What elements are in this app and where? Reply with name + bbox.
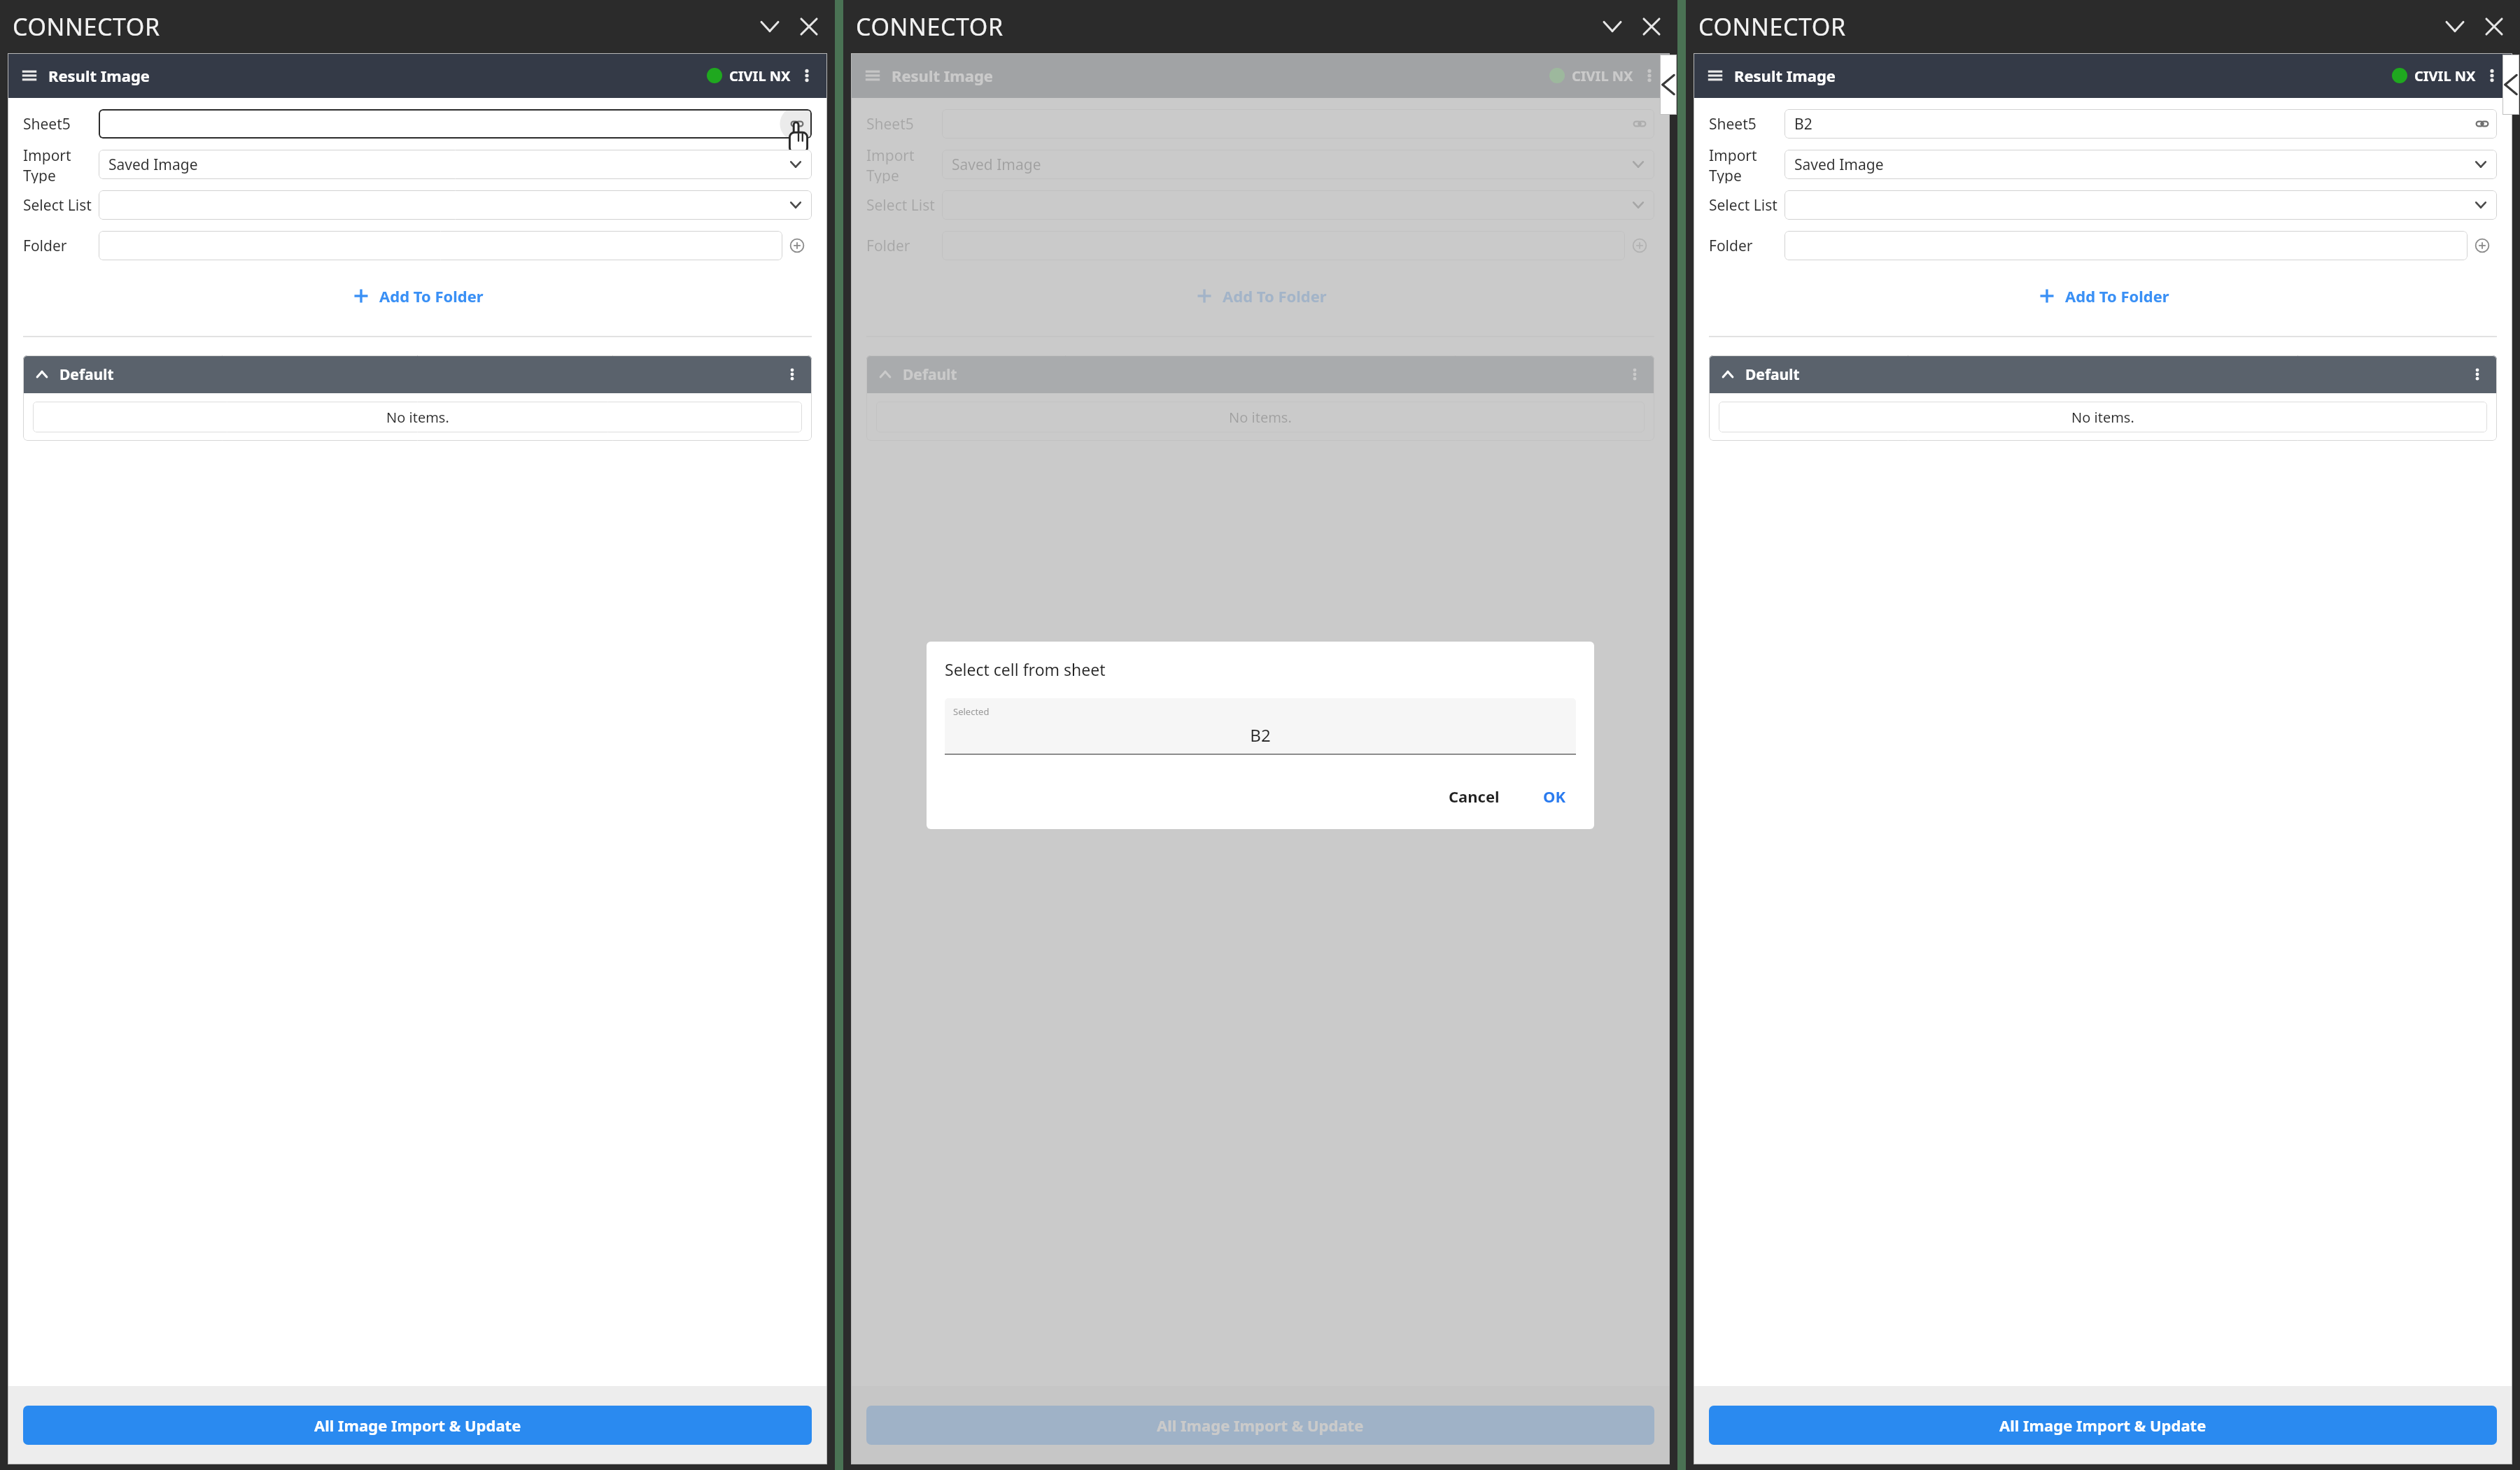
button[interactable]: Close [2478,10,2510,43]
staticText: Default [903,365,957,385]
staticText: CONNECTOR [856,10,1004,43]
staticText: CIVIL NX [2414,66,2476,85]
staticText: Add To Folder [2065,285,2169,306]
button[interactable] [99,231,782,260]
button[interactable]: Card menu [782,365,802,384]
button[interactable]: Add folder [782,231,812,260]
button[interactable]: No items. [33,402,802,432]
staticText: Folder [866,236,942,256]
staticText: All Image Import & Update [314,1415,521,1436]
staticText: Sheet5 [866,114,942,134]
button[interactable] [1785,190,2497,220]
button[interactable] [99,190,812,220]
staticText: Result Image [48,65,150,86]
staticText: Add To Folder [379,285,484,306]
staticText: No items. [1229,408,1292,427]
button[interactable]: Add To Folder [866,280,1654,312]
staticText: Folder [1709,236,1785,256]
staticText: CIVIL NX [729,66,791,85]
button[interactable]: OK [1533,780,1576,812]
button[interactable]: Cancel [1439,780,1509,812]
button[interactable]: Add To Folder [23,280,812,312]
staticText: Result Image [892,65,993,86]
button[interactable]: More options [2482,65,2503,86]
button[interactable]: All Image Import & Update [23,1406,812,1445]
staticText: Import Type [866,146,942,183]
staticText: Default [1745,365,1800,385]
staticText: Saved Image [1794,155,1884,175]
button[interactable]: More options [1639,65,1660,86]
button[interactable] [1785,231,2468,260]
staticText: Select List [1709,195,1785,215]
staticText: Saved Image [108,155,198,175]
button[interactable]: Card menu [1625,365,1645,384]
button[interactable]: Select cell from sheet [787,113,808,134]
staticText: B2 [1794,114,1812,134]
button[interactable]: All Image Import & Update [866,1406,1654,1445]
button[interactable]: Card menu [2468,365,2487,384]
button[interactable]: Select cell from sheet [99,109,812,139]
staticText: OK [1543,786,1566,807]
staticText: Sheet5 [1709,114,1785,134]
button[interactable]: B2 [1785,109,2497,139]
staticText: Default [59,365,114,385]
button[interactable]: Default [1719,355,2487,393]
button[interactable]: Collapse panel [2503,55,2519,115]
button[interactable]: No items. [876,402,1645,432]
button[interactable]: Minimize [2439,10,2471,43]
button[interactable]: Collapse panel [1660,55,1677,115]
button[interactable]: Minimize [754,10,786,43]
staticText: Sheet5 [23,114,99,134]
button[interactable]: Minimize [1596,10,1628,43]
button[interactable]: More options [796,65,817,86]
button[interactable]: Saved Image [1785,150,2497,179]
staticText: No items. [386,408,449,427]
button[interactable]: Saved Image [942,150,1654,179]
staticText: CONNECTOR [13,10,160,43]
staticText: Cancel [1449,786,1500,807]
button[interactable]: Default [876,355,1645,393]
staticText: All Image Import & Update [1999,1415,2206,1436]
staticText: Folder [23,236,99,256]
staticText: B2 [945,723,1576,747]
staticText: Import Type [23,146,99,183]
button[interactable]: Menu [17,64,41,87]
staticText: Select List [23,195,99,215]
button[interactable]: Add folder [2468,231,2497,260]
button[interactable]: All Image Import & Update [1709,1406,2497,1445]
button[interactable]: Saved Image [99,150,812,179]
button[interactable]: Add To Folder [1709,280,2497,312]
staticText: Saved Image [952,155,1041,175]
button[interactable]: Select cell from sheet [2472,113,2493,134]
staticText: Select cell from sheet [945,658,1106,680]
staticText: All Image Import & Update [1157,1415,1364,1436]
staticText: No items. [2071,408,2134,427]
staticText: Select List [866,195,942,215]
button[interactable]: Menu [1703,64,1727,87]
button[interactable]: Menu [861,64,885,87]
button[interactable]: Default [33,355,802,393]
button[interactable]: No items. [1719,402,2487,432]
staticText: Selected [953,705,990,718]
button[interactable]: Close [793,10,825,43]
staticText: Result Image [1734,65,1836,86]
staticText: CONNECTOR [1698,10,1846,43]
button[interactable]: Close [1635,10,1668,43]
button[interactable]: Select cell from sheet [1629,113,1650,134]
staticText: CIVIL NX [1572,66,1633,85]
staticText: Import Type [1709,146,1785,183]
staticText: Add To Folder [1223,285,1327,306]
button[interactable]: Add folder [1625,231,1654,260]
